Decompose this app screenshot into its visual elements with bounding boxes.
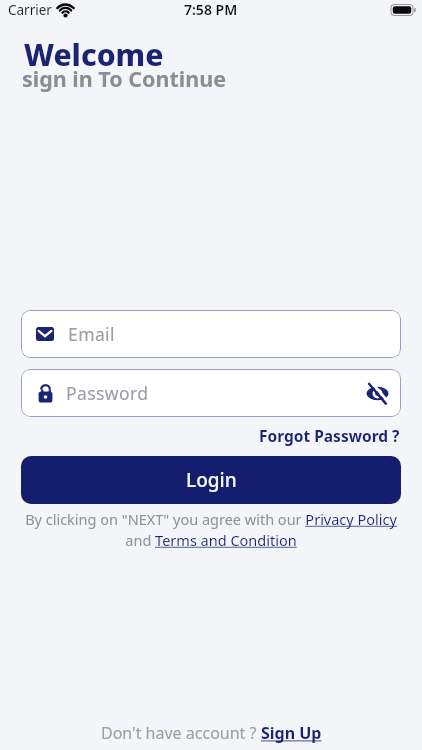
button[interactable]: Don't have account ? [101,722,322,744]
staticText: Welcome [24,34,164,75]
staticText: sign in To Continue [22,64,227,93]
staticText: Don't have account ? [101,722,261,744]
staticText: 7:58 PM [184,0,238,19]
button[interactable] [357,373,397,413]
staticText: Login [186,467,237,493]
button[interactable]: By clicking on "NEXT" you agree with our… [0,509,422,529]
staticText: Password [66,381,149,405]
staticText: Sign Up [261,722,322,744]
staticText: Carrier [8,1,52,19]
button[interactable]: and Terms and Condition [0,530,422,550]
button[interactable]: Forgot Password ? [259,425,400,446]
button[interactable]: Login [21,456,401,504]
button[interactable]: Email [21,310,401,358]
button[interactable]: Password [21,369,401,417]
staticText: Email [68,322,115,346]
